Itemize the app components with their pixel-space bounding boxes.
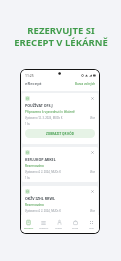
staticText: eRecept (25, 81, 42, 87)
staticText: KEFLUKOP ARKEL (25, 157, 56, 162)
staticText: OKŽV IZHL RRWL (25, 196, 55, 201)
staticText: Vystaveno 4. 2. 2024, MUDr. K (25, 209, 61, 213)
staticText: POUŽÍVAT OFS.J (25, 103, 53, 108)
staticText: Burza volných (75, 82, 96, 86)
staticText: Lékaři (55, 226, 63, 229)
button[interactable]: Lékárny (36, 215, 51, 233)
button[interactable]: Lékaři (51, 215, 67, 233)
staticText: 1 ks (25, 176, 30, 180)
staticText: Připraveno k vyzvednutí v lékárně (25, 110, 75, 114)
button[interactable]: Zavřít (90, 150, 95, 155)
button[interactable]: Profil (67, 215, 83, 233)
staticText: Vystaveno 4. 2. 2024, MUDr. K (25, 170, 61, 174)
button[interactable]: ZOBRAZIT QR KÓD (25, 129, 95, 138)
staticText: Rezervováno (25, 164, 44, 168)
button[interactable]: Recepty (21, 215, 36, 233)
button[interactable]: Zavřít (22, 147, 98, 182)
staticText: Lékárny (39, 226, 49, 229)
staticText: Rezervováno (25, 203, 44, 207)
staticText: Více (90, 170, 95, 174)
button[interactable]: Více (83, 215, 99, 233)
staticText: REZERVUJTE SI ERECEPT V LÉKÁRNĚ (14, 24, 108, 48)
staticText: ZOBRAZIT QR KÓD (46, 132, 75, 136)
button[interactable]: Zavřít (90, 189, 95, 194)
staticText: Více (90, 116, 95, 120)
staticText: 11:25 (25, 73, 34, 78)
button[interactable]: Zavřít (22, 93, 98, 144)
staticText: Profil (72, 226, 79, 229)
button[interactable]: Burza volných (75, 82, 96, 86)
staticText: Vystaveno 12. 3. 2024, MUDr. K (25, 116, 63, 120)
staticText: Více (89, 226, 94, 229)
button[interactable]: Zavřít (90, 96, 95, 101)
staticText: 1 ks (25, 122, 30, 126)
button[interactable]: Zavřít (22, 186, 98, 221)
staticText: Více (90, 209, 95, 213)
staticText: Recepty (24, 226, 34, 229)
